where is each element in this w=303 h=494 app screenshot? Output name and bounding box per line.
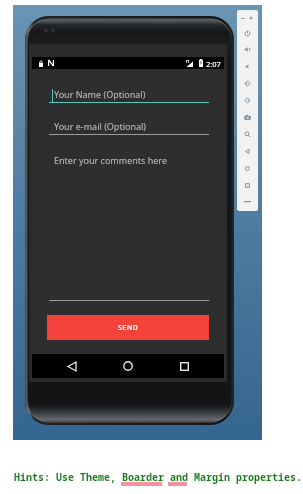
- button[interactable]: Volume down: [240, 61, 255, 72]
- staticText: Hints: Use Theme, Boarder and Margin pro…: [14, 470, 302, 484]
- button[interactable]: Your Name (Optional): [49, 87, 209, 103]
- button[interactable]: Your e-mail (Optional): [49, 119, 209, 135]
- staticText: Your Name (Optional): [54, 88, 146, 100]
- staticText: Enter your comments here: [54, 154, 167, 166]
- button[interactable]: Rotate left: [240, 78, 255, 89]
- button[interactable]: Home: [116, 354, 140, 378]
- button[interactable]: Rotate right: [240, 95, 255, 106]
- button[interactable]: Enter your comments here: [49, 149, 209, 299]
- button[interactable]: Take screenshot: [240, 112, 255, 123]
- button[interactable]: Recent apps: [172, 354, 196, 378]
- button[interactable]: Power: [240, 28, 255, 39]
- button[interactable]: Zoom: [240, 129, 255, 140]
- staticText: SEND: [118, 323, 139, 333]
- button[interactable]: Volume up: [240, 44, 255, 55]
- button[interactable]: Back: [240, 146, 255, 157]
- staticText: Your e-mail (Optional): [54, 120, 147, 132]
- button[interactable]: More: [240, 196, 255, 206]
- button[interactable]: Overview: [240, 180, 255, 191]
- staticText: 2:07: [206, 59, 221, 69]
- button[interactable]: SEND: [47, 315, 209, 340]
- button[interactable]: Back: [60, 354, 84, 378]
- button[interactable]: Home: [240, 163, 255, 174]
